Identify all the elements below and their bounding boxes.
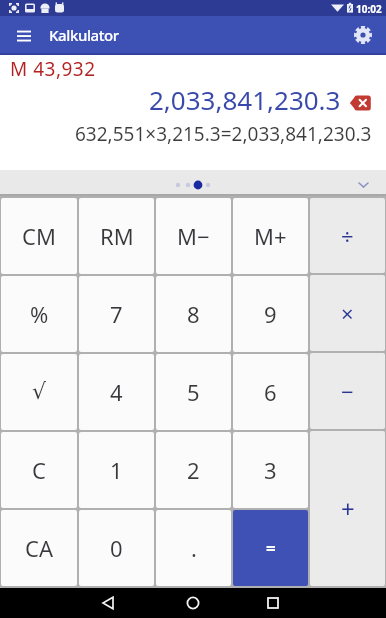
staticText: M+ xyxy=(254,221,287,251)
button[interactable]: CM xyxy=(1,198,77,274)
button[interactable]: 6 xyxy=(233,354,308,430)
button[interactable] xyxy=(259,589,287,617)
button[interactable]: 1 xyxy=(79,432,154,508)
button[interactable]: M+ xyxy=(233,198,308,274)
staticText: 7 xyxy=(110,299,123,329)
staticText: = xyxy=(266,537,276,560)
button[interactable]: CA xyxy=(1,510,77,586)
button[interactable]: . xyxy=(156,510,231,586)
button[interactable]: ÷ xyxy=(310,198,385,273)
button[interactable]: × xyxy=(310,275,385,351)
staticText: M 43,932 xyxy=(10,56,96,82)
staticText: 10:02 xyxy=(356,2,382,16)
button[interactable]: 9 xyxy=(233,276,308,352)
button[interactable]: 8 xyxy=(156,276,231,352)
button[interactable]: 5 xyxy=(156,354,231,430)
button[interactable]: = xyxy=(233,510,308,586)
button[interactable]: 4 xyxy=(79,354,154,430)
staticText: 8 xyxy=(187,299,200,329)
staticText: RM xyxy=(100,221,134,251)
staticText: × xyxy=(341,298,354,328)
staticText: + xyxy=(341,492,355,525)
button[interactable]: M− xyxy=(156,198,231,274)
button[interactable]: 3 xyxy=(233,432,308,508)
button[interactable]: + xyxy=(310,431,385,586)
button[interactable] xyxy=(349,95,371,111)
staticText: CA xyxy=(25,533,53,563)
button[interactable]: − xyxy=(310,353,385,429)
staticText: 632,551×3,215.3=2,033,841,230.3 xyxy=(75,121,372,147)
staticText: ÷ xyxy=(341,221,354,251)
button[interactable]: √ xyxy=(1,354,77,430)
staticText: √ xyxy=(32,379,47,405)
staticText: M− xyxy=(177,221,210,251)
button[interactable] xyxy=(94,589,122,617)
button[interactable]: 7 xyxy=(79,276,154,352)
staticText: 6 xyxy=(264,377,277,407)
staticText: % xyxy=(30,299,49,329)
staticText: 5 xyxy=(187,377,200,407)
button[interactable]: 0 xyxy=(79,510,154,586)
staticText: 0 xyxy=(110,533,123,563)
button[interactable]: 2 xyxy=(156,432,231,508)
button[interactable]: % xyxy=(1,276,77,352)
button[interactable] xyxy=(10,21,38,49)
staticText: 1 xyxy=(110,455,123,485)
staticText: 2 xyxy=(187,455,200,485)
staticText: 2,033,841,230.3 xyxy=(149,82,341,117)
staticText: 3 xyxy=(264,455,277,485)
button[interactable] xyxy=(350,22,376,48)
staticText: 9 xyxy=(264,299,277,329)
staticText: 4 xyxy=(110,377,123,407)
staticText: . xyxy=(191,533,197,563)
button[interactable]: C xyxy=(1,432,77,508)
button[interactable] xyxy=(179,589,207,617)
button[interactable]: RM xyxy=(79,198,154,274)
staticText: C xyxy=(32,455,46,485)
staticText: − xyxy=(341,376,354,406)
staticText: Kalkulator xyxy=(49,25,119,45)
staticText: CM xyxy=(22,221,56,251)
